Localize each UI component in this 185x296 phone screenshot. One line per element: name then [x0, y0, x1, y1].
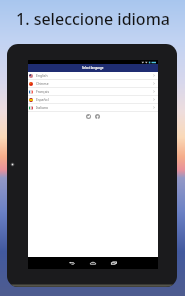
staticText: Français	[36, 89, 50, 94]
button[interactable]: Français	[28, 88, 158, 96]
button[interactable]: Recents	[109, 257, 119, 269]
staticText: Chinese	[36, 81, 49, 86]
staticText: 1. seleccione idioma	[16, 8, 170, 30]
staticText: Italiano	[36, 105, 49, 110]
button[interactable]: English	[28, 72, 158, 80]
button[interactable]: Chinese	[28, 80, 158, 88]
staticText: English	[36, 73, 48, 78]
button[interactable]: Facebook	[95, 114, 100, 119]
button[interactable]: Home	[88, 257, 98, 269]
button[interactable]: Italiano	[28, 104, 158, 112]
button[interactable]: Twitter	[86, 114, 91, 119]
staticText: Español	[36, 97, 49, 102]
button[interactable]: Back	[67, 257, 77, 269]
staticText: Select language	[82, 66, 104, 70]
button[interactable]: Español	[28, 96, 158, 104]
